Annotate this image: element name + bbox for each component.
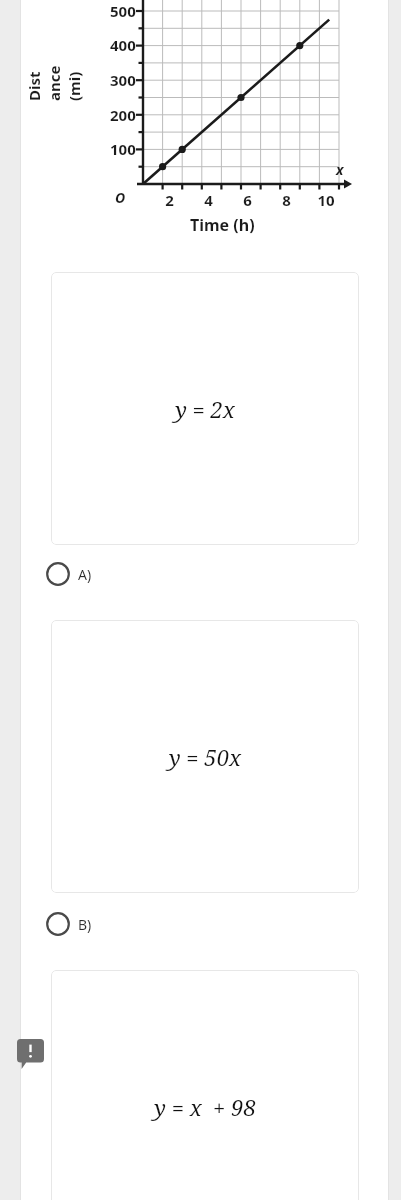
staticText: Distance (mi) — [24, 65, 84, 101]
staticText: 10 — [317, 190, 335, 210]
staticText: 300 — [110, 70, 136, 90]
staticText: A) — [78, 565, 92, 584]
button[interactable]: Comment — [17, 1039, 44, 1069]
staticText: 500 — [110, 1, 136, 21]
staticText: 8 — [282, 190, 291, 210]
staticText: 400 — [110, 35, 136, 55]
staticText: 100 — [110, 139, 136, 159]
staticText: y = 50x — [169, 742, 241, 772]
button[interactable]: A) — [45, 561, 165, 587]
staticText: 4 — [204, 190, 213, 210]
staticText: y = x + 98 — [154, 1092, 256, 1122]
staticText: O — [115, 188, 126, 207]
button[interactable]: y = 50x — [51, 620, 359, 893]
button[interactable]: y = 2x — [51, 272, 359, 545]
staticText: B) — [78, 915, 92, 934]
button[interactable]: B) — [45, 911, 165, 937]
staticText: 6 — [243, 190, 252, 210]
staticText: x — [336, 160, 344, 179]
button[interactable]: y = x + 98 — [51, 970, 359, 1200]
staticText: y = 2x — [175, 394, 235, 424]
staticText: 200 — [110, 105, 136, 125]
staticText: 2 — [165, 190, 174, 210]
staticText: Time (h) — [190, 214, 255, 236]
